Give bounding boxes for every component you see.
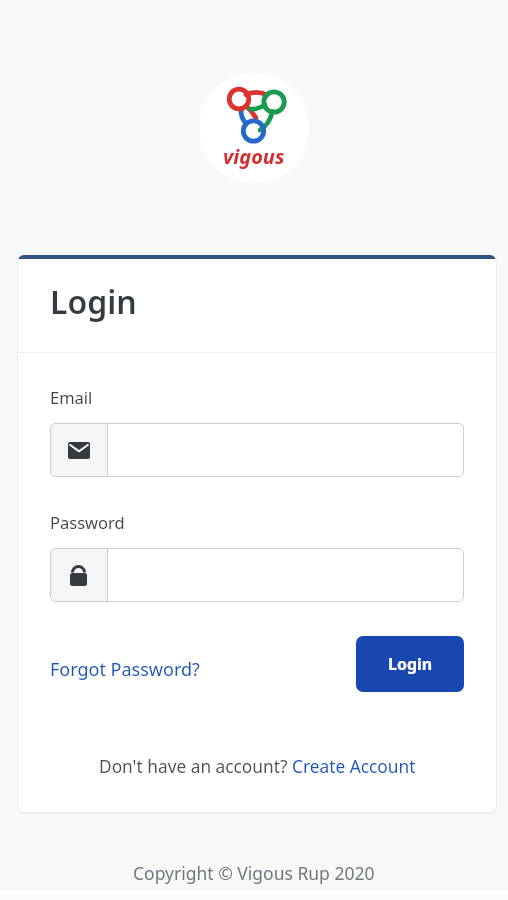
- staticText: Email: [50, 386, 93, 408]
- staticText: Forgot Password?: [50, 657, 200, 682]
- staticText: Login: [388, 653, 433, 675]
- button[interactable]: Forgot Password?: [50, 657, 200, 682]
- button[interactable]: Don't have an account? Create Account: [18, 755, 496, 779]
- button[interactable]: [50, 548, 464, 602]
- staticText: Copyright © Vigous Rup 2020: [133, 861, 375, 885]
- button[interactable]: [50, 423, 464, 477]
- staticText: Login: [50, 280, 137, 324]
- staticText: Password: [50, 511, 125, 533]
- staticText: vigous: [223, 143, 285, 170]
- staticText: Don't have an account? Create Account: [99, 755, 416, 779]
- button[interactable]: Login: [356, 636, 464, 692]
